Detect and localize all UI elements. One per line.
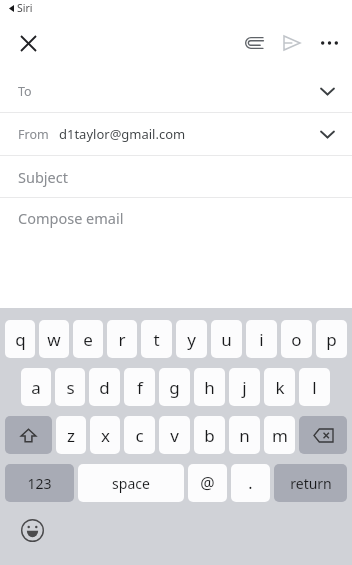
button[interactable]: a bbox=[21, 368, 51, 406]
button[interactable]: l bbox=[299, 368, 330, 406]
button[interactable]: x bbox=[90, 416, 120, 454]
button[interactable]: s bbox=[55, 368, 85, 406]
button[interactable]: Emoji keyboard bbox=[16, 514, 48, 546]
button[interactable]: From bbox=[0, 113, 352, 155]
staticText: m bbox=[272, 424, 288, 447]
staticText: q bbox=[15, 328, 26, 351]
staticText: d bbox=[99, 376, 110, 399]
staticText: r bbox=[118, 328, 126, 351]
staticText: u bbox=[221, 328, 232, 351]
button[interactable]: Attach file bbox=[235, 24, 273, 62]
staticText: v bbox=[170, 424, 179, 447]
button[interactable]: p bbox=[316, 320, 347, 358]
button[interactable]: v bbox=[159, 416, 190, 454]
button[interactable]: More options bbox=[311, 25, 347, 61]
staticText: a bbox=[31, 376, 41, 399]
button[interactable]: . bbox=[231, 464, 270, 502]
staticText: s bbox=[66, 376, 75, 399]
button[interactable]: return bbox=[274, 464, 347, 502]
button[interactable]: To bbox=[0, 70, 352, 112]
staticText: Compose email bbox=[18, 208, 124, 228]
staticText: d1taylor@gmail.com bbox=[59, 125, 186, 143]
button[interactable]: space bbox=[78, 464, 184, 502]
button[interactable]: Close bbox=[9, 24, 47, 62]
staticText: t bbox=[153, 328, 160, 351]
button[interactable]: n bbox=[229, 416, 260, 454]
staticText: z bbox=[67, 424, 75, 447]
staticText: Subject bbox=[18, 167, 68, 187]
staticText: c bbox=[135, 424, 144, 447]
button[interactable]: Subject bbox=[0, 156, 352, 197]
button[interactable]: m bbox=[264, 416, 295, 454]
button[interactable]: f bbox=[124, 368, 155, 406]
button[interactable]: 123 bbox=[5, 464, 74, 502]
staticText: l bbox=[312, 376, 317, 399]
button[interactable]: w bbox=[39, 320, 69, 358]
staticText: e bbox=[83, 328, 93, 351]
button[interactable]: j bbox=[229, 368, 260, 406]
button[interactable]: r bbox=[107, 320, 137, 358]
button[interactable]: t bbox=[141, 320, 172, 358]
staticText: o bbox=[291, 328, 302, 351]
button[interactable]: g bbox=[159, 368, 190, 406]
button[interactable]: Compose email bbox=[0, 198, 352, 238]
staticText: 123 bbox=[27, 474, 52, 493]
button[interactable]: o bbox=[281, 320, 312, 358]
button[interactable]: c bbox=[124, 416, 155, 454]
button[interactable]: z bbox=[56, 416, 86, 454]
staticText: i bbox=[259, 328, 264, 351]
staticText: f bbox=[137, 376, 143, 399]
staticText: x bbox=[101, 424, 110, 447]
staticText: From bbox=[18, 126, 49, 143]
button[interactable]: Backspace bbox=[299, 416, 347, 454]
staticText: w bbox=[47, 328, 61, 351]
button[interactable]: d bbox=[89, 368, 120, 406]
staticText: h bbox=[204, 376, 215, 399]
button[interactable]: i bbox=[246, 320, 277, 358]
staticText: space bbox=[112, 474, 150, 493]
staticText: j bbox=[242, 376, 247, 399]
staticText: Siri bbox=[17, 1, 33, 15]
staticText: y bbox=[187, 328, 196, 351]
staticText: g bbox=[169, 376, 180, 399]
staticText: @ bbox=[200, 472, 215, 494]
button[interactable]: y bbox=[176, 320, 207, 358]
button[interactable]: q bbox=[5, 320, 35, 358]
button[interactable]: b bbox=[194, 416, 225, 454]
button[interactable]: e bbox=[73, 320, 103, 358]
staticText: return bbox=[290, 474, 332, 493]
button[interactable]: @ bbox=[188, 464, 227, 502]
staticText: n bbox=[239, 424, 250, 447]
staticText: . bbox=[248, 472, 253, 494]
button[interactable]: Expand recipients bbox=[312, 76, 342, 106]
button[interactable]: Expand recipients bbox=[312, 119, 342, 149]
button[interactable]: u bbox=[211, 320, 242, 358]
button[interactable]: h bbox=[194, 368, 225, 406]
button[interactable]: k bbox=[264, 368, 295, 406]
staticText: b bbox=[204, 424, 215, 447]
button[interactable]: Shift bbox=[5, 416, 52, 454]
staticText: p bbox=[326, 328, 337, 351]
staticText: k bbox=[275, 376, 285, 399]
staticText: To bbox=[18, 83, 32, 100]
button[interactable]: Send bbox=[273, 24, 311, 62]
